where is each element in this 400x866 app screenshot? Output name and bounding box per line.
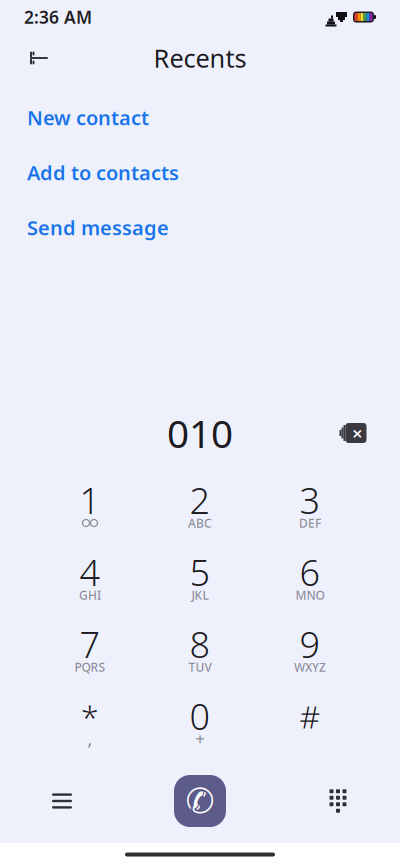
- staticText: ABC: [188, 515, 212, 531]
- staticText: TUV: [188, 659, 211, 675]
- button[interactable]: 8: [145, 615, 255, 687]
- button[interactable]: *: [35, 687, 145, 759]
- button[interactable]: 5: [145, 543, 255, 615]
- staticText: 3: [299, 476, 320, 524]
- staticText: MNO: [295, 587, 324, 603]
- button[interactable]: New contact: [0, 90, 400, 145]
- button[interactable]: 0: [145, 687, 255, 759]
- button[interactable]: Call: [174, 775, 226, 827]
- staticText: 9: [299, 620, 320, 668]
- button[interactable]: 1: [35, 471, 145, 543]
- staticText: 4: [79, 548, 100, 596]
- staticText: +: [195, 728, 204, 750]
- staticText: 8: [189, 620, 210, 668]
- staticText: 010: [167, 407, 233, 459]
- button[interactable]: 7: [35, 615, 145, 687]
- button[interactable]: 2: [145, 471, 255, 543]
- staticText: JKL: [191, 587, 208, 603]
- staticText: Add to contacts: [27, 159, 179, 186]
- button[interactable]: 6: [255, 543, 365, 615]
- button[interactable]: 3: [255, 471, 365, 543]
- staticText: Send message: [27, 214, 169, 241]
- button[interactable]: #: [255, 687, 365, 759]
- button[interactable]: Backspace: [327, 411, 379, 455]
- button[interactable]: Back: [19, 38, 59, 78]
- staticText: New contact: [27, 104, 149, 131]
- button[interactable]: Menu: [30, 773, 94, 829]
- staticText: DEF: [299, 515, 321, 531]
- staticText: PQRS: [74, 659, 105, 675]
- button[interactable]: 9: [255, 615, 365, 687]
- staticText: 0: [189, 692, 210, 740]
- staticText: ,: [87, 727, 92, 750]
- staticText: GHI: [79, 587, 101, 603]
- staticText: 2:36 AM: [24, 5, 92, 28]
- staticText: WXYZ: [294, 659, 326, 675]
- staticText: ×: [352, 421, 363, 445]
- button[interactable]: Send message: [0, 200, 400, 255]
- staticText: 6: [299, 548, 320, 596]
- staticText: Recents: [153, 41, 246, 75]
- staticText: 1: [79, 476, 100, 524]
- staticText: ✆: [185, 781, 214, 821]
- staticText: 5: [189, 548, 210, 596]
- button[interactable]: Add to contacts: [0, 145, 400, 200]
- button[interactable]: Keypad: [306, 773, 370, 829]
- staticText: 7: [79, 620, 100, 668]
- staticText: #: [299, 695, 320, 737]
- staticText: *: [81, 695, 99, 737]
- button[interactable]: 4: [35, 543, 145, 615]
- staticText: 2: [189, 476, 210, 524]
